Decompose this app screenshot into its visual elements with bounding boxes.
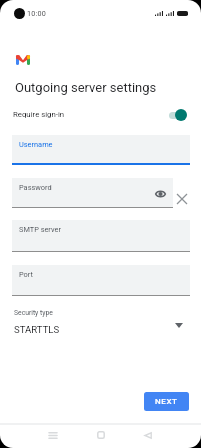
button[interactable]: Recent apps bbox=[40, 424, 65, 446]
button[interactable] bbox=[169, 108, 189, 122]
staticText: NEXT bbox=[155, 397, 178, 406]
button[interactable]: Back bbox=[135, 424, 160, 446]
button[interactable]: SMTP server bbox=[12, 220, 190, 251]
button[interactable]: Port bbox=[12, 265, 190, 296]
button[interactable]: Password bbox=[12, 178, 173, 208]
button[interactable]: Username bbox=[12, 135, 190, 163]
button[interactable]: NEXT bbox=[144, 392, 189, 411]
staticText: Outgoing server settings bbox=[15, 80, 157, 95]
button[interactable]: Clear bbox=[174, 191, 190, 207]
staticText: Username bbox=[19, 140, 53, 149]
button[interactable]: Require sign-in bbox=[0, 104, 201, 125]
staticText: 10:00 bbox=[27, 9, 46, 17]
staticText: Password bbox=[19, 183, 52, 192]
staticText: Require sign-in bbox=[13, 110, 65, 119]
button[interactable]: Home bbox=[88, 424, 113, 446]
staticText: Port bbox=[19, 270, 33, 279]
button[interactable]: Show password bbox=[155, 188, 166, 199]
button[interactable]: Security type bbox=[0, 305, 201, 339]
staticText: Security type bbox=[14, 309, 53, 317]
staticText: SMTP server bbox=[19, 225, 61, 234]
staticText: STARTTLS bbox=[14, 324, 60, 335]
